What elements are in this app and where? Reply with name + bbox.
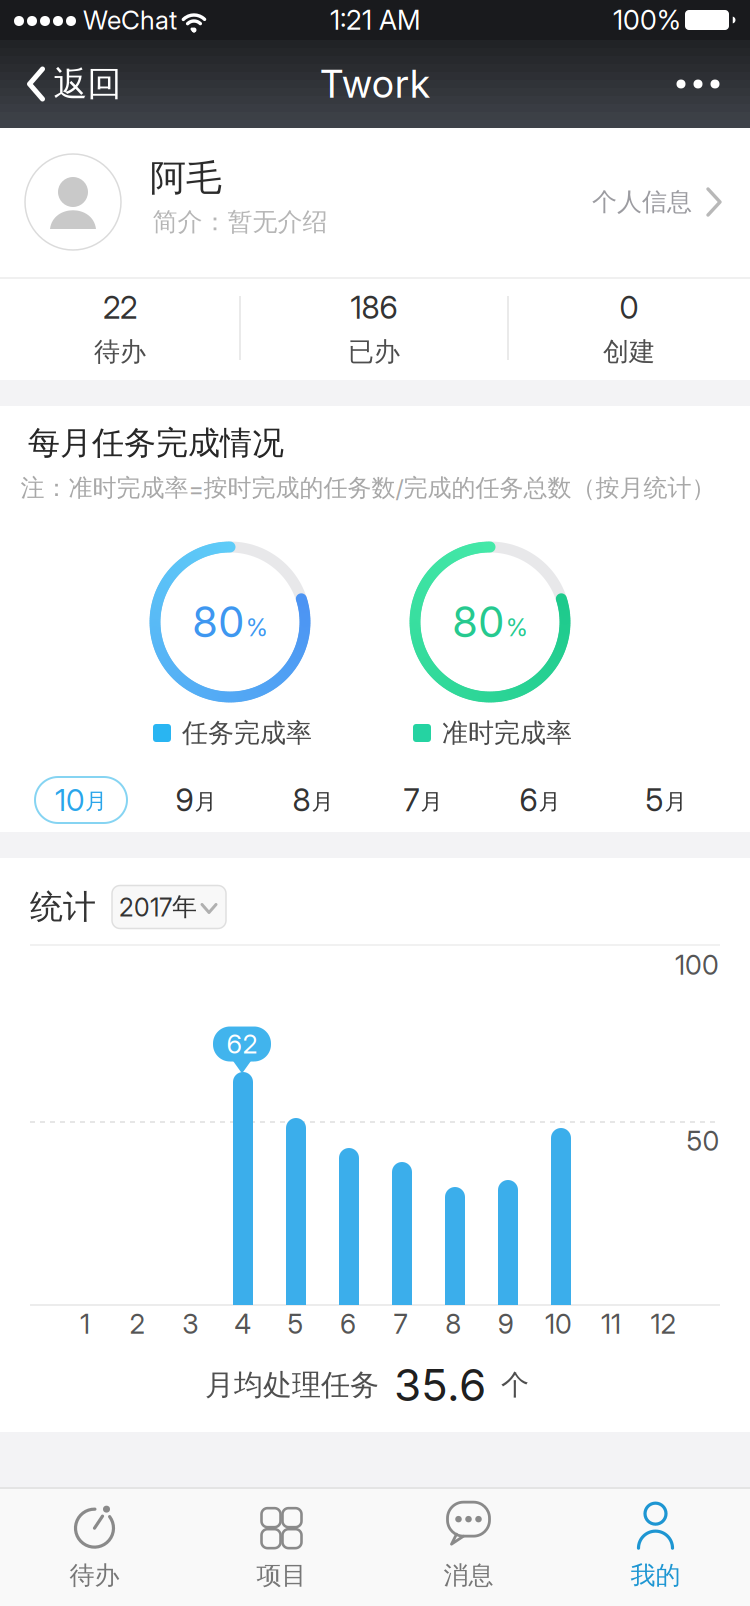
- button[interactable]: 阿毛: [0, 128, 750, 277]
- button[interactable]: 返回: [26, 40, 121, 128]
- staticText: %: [246, 613, 268, 642]
- staticText: 8: [292, 782, 310, 818]
- staticText: 1:21 AM: [330, 4, 420, 36]
- staticText: 个: [501, 1368, 529, 1402]
- staticText: 35.6: [394, 1359, 486, 1411]
- staticText: 简介：暂无介绍: [152, 207, 327, 237]
- staticText: 月: [538, 788, 560, 815]
- staticText: 7: [394, 1308, 408, 1340]
- staticText: 任务完成率: [182, 717, 312, 749]
- staticText: 已办: [348, 336, 400, 368]
- staticText: 我的: [630, 1560, 680, 1591]
- staticText: 月: [85, 788, 107, 815]
- staticText: 每月任务完成情况: [28, 423, 284, 463]
- staticText: 2017年: [119, 892, 197, 922]
- staticText: 5: [645, 782, 663, 818]
- staticText: 22: [103, 289, 137, 326]
- staticText: 月: [311, 788, 333, 815]
- staticText: 创建: [603, 336, 655, 368]
- staticText: Twork: [319, 62, 430, 106]
- staticText: 6: [340, 1308, 356, 1340]
- staticText: WeChat: [83, 5, 177, 35]
- button[interactable]: 我的: [562, 1487, 749, 1606]
- staticText: %: [506, 613, 528, 642]
- staticText: 0: [619, 289, 638, 326]
- staticText: 80: [192, 597, 244, 647]
- button[interactable]: 待办: [1, 1487, 188, 1606]
- staticText: 月: [664, 788, 686, 815]
- staticText: 100: [675, 949, 719, 981]
- staticText: 月均处理任务: [205, 1367, 379, 1403]
- staticText: 7: [403, 782, 419, 818]
- staticText: 阿毛: [150, 156, 222, 200]
- button[interactable]: [658, 54, 738, 114]
- staticText: 80: [452, 597, 504, 647]
- button[interactable]: 6: [495, 775, 585, 825]
- button[interactable]: 消息: [375, 1487, 562, 1606]
- button[interactable]: 0: [508, 289, 750, 368]
- staticText: 消息: [443, 1560, 493, 1591]
- staticText: 待办: [94, 336, 146, 368]
- staticText: 50: [686, 1125, 719, 1157]
- staticText: 9: [175, 782, 193, 818]
- staticText: 10: [55, 782, 84, 818]
- button[interactable]: 2017年: [112, 885, 226, 928]
- staticText: 9: [498, 1308, 514, 1340]
- button[interactable]: 5: [621, 775, 711, 825]
- staticText: 3: [182, 1308, 198, 1340]
- button[interactable]: 8: [268, 775, 358, 825]
- staticText: 62: [226, 1029, 257, 1059]
- button[interactable]: 9: [151, 775, 241, 825]
- staticText: 返回: [53, 63, 121, 105]
- staticText: 10: [545, 1308, 572, 1340]
- staticText: 项目: [256, 1560, 306, 1591]
- staticText: 1: [80, 1308, 90, 1340]
- staticText: 8: [445, 1308, 461, 1340]
- staticText: 12: [651, 1308, 677, 1340]
- staticText: 6: [519, 782, 537, 818]
- staticText: 5: [287, 1308, 303, 1340]
- button[interactable]: 7: [378, 775, 468, 825]
- staticText: 186: [350, 289, 397, 326]
- button[interactable]: 10: [33, 775, 129, 825]
- staticText: 100%: [613, 4, 681, 36]
- button[interactable]: 项目: [188, 1487, 375, 1606]
- staticText: 个人信息: [592, 187, 692, 217]
- staticText: 准时完成率: [442, 717, 572, 749]
- staticText: 11: [601, 1308, 621, 1340]
- button[interactable]: 22: [0, 289, 240, 368]
- button[interactable]: 186: [240, 289, 508, 368]
- staticText: 2: [130, 1308, 146, 1340]
- staticText: 统计: [30, 887, 96, 927]
- staticText: 月: [194, 788, 216, 815]
- staticText: 月: [420, 788, 442, 815]
- staticText: 注：准时完成率=按时完成的任务数/完成的任务总数（按月统计）: [20, 473, 715, 503]
- staticText: 待办: [69, 1560, 119, 1591]
- staticText: 4: [234, 1308, 251, 1340]
